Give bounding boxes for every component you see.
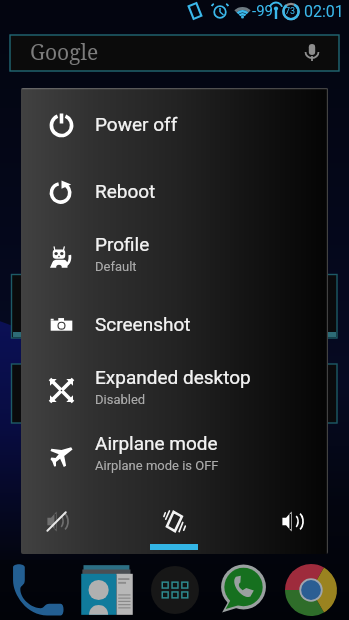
staticText: Google [30,38,99,67]
button[interactable]: Airplane mode [21,423,328,489]
staticText: Airplane mode is OFF [95,458,219,473]
staticText: Airplane mode [95,432,218,454]
button[interactable]: Google [10,35,339,71]
button[interactable]: Reboot [21,158,328,224]
button[interactable]: Power off [21,91,328,157]
staticText: Power off [95,113,178,135]
staticText: Expanded desktop [95,366,251,388]
staticText: 02:01 [304,2,344,21]
button[interactable]: Silent [21,493,103,554]
button[interactable]: Contacts [79,563,135,617]
button[interactable]: All apps [151,566,199,614]
staticText: 73 [285,6,296,17]
button[interactable]: Chrome [285,564,337,616]
staticText: Screenshot [95,313,191,335]
button[interactable]: Screenshot [21,291,328,357]
other: Voice search [302,43,322,63]
button[interactable]: Vibrate [128,493,220,554]
staticText: Reboot [95,180,156,202]
staticText: Default [95,259,137,274]
staticText: Profile [95,233,150,255]
button[interactable]: Phone [8,560,66,616]
button[interactable]: Expanded desktop [21,357,328,423]
staticText: -99 [252,2,274,20]
button[interactable]: Sound [246,493,328,554]
button[interactable]: Profile [21,224,328,290]
staticText: Disabled [95,392,146,407]
button[interactable]: WhatsApp [217,564,268,614]
